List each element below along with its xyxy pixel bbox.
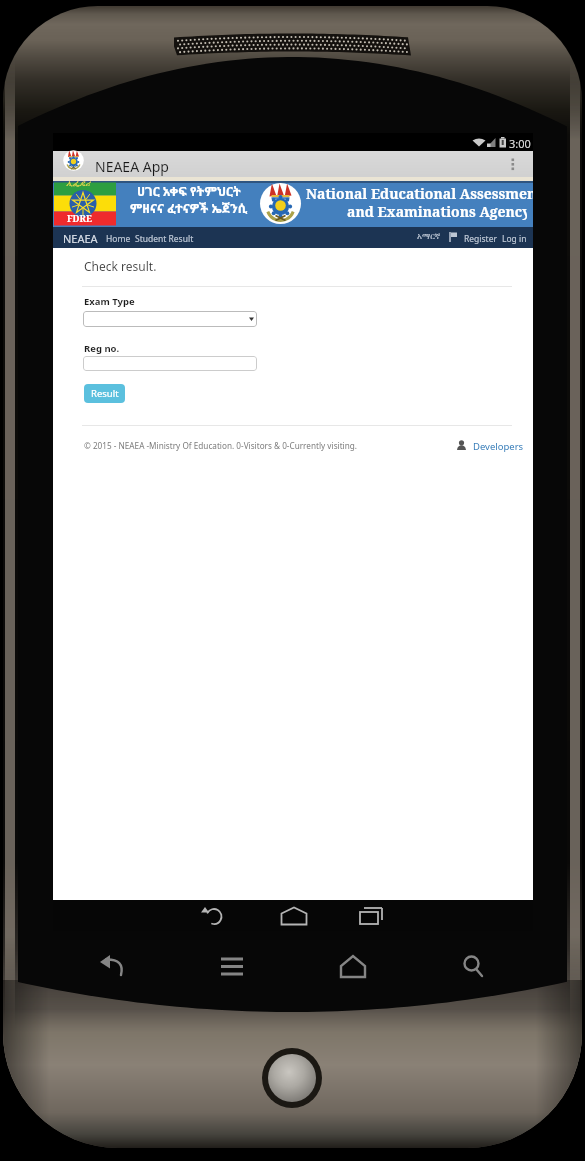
button[interactable]	[53, 900, 213, 931]
staticText: National Educational Assessment	[306, 184, 533, 203]
staticText: Exam Type	[84, 295, 135, 308]
button[interactable]: NEAEA	[63, 231, 98, 246]
staticText: Result	[91, 387, 119, 400]
staticText: FDRE	[67, 212, 92, 224]
staticText: Check result.	[84, 258, 157, 274]
button[interactable]: Home	[106, 233, 131, 245]
button[interactable]: Register	[464, 233, 497, 245]
staticText: NEAEA App	[95, 157, 169, 176]
button[interactable]	[83, 311, 257, 327]
staticText: ኢፌዴሪ	[66, 180, 90, 188]
button[interactable]	[503, 151, 533, 181]
button[interactable]: Developers	[473, 440, 524, 453]
staticText: Reg no.	[84, 342, 120, 355]
button[interactable]	[83, 356, 257, 371]
staticText: ምዘናና ፈተናዎች ኤጀንሲ	[130, 200, 248, 217]
staticText: ሀገር አቀፍ የትምህርት	[137, 183, 241, 200]
button[interactable]	[373, 900, 533, 931]
button[interactable]: Result	[84, 384, 125, 403]
button[interactable]	[213, 900, 373, 931]
button[interactable]: Log in	[502, 233, 527, 245]
button[interactable]: አማርኛ	[417, 232, 441, 241]
staticText: © 2015 - NEAEA -Ministry Of Education. 0…	[84, 440, 358, 451]
staticText: 3:00	[509, 136, 531, 151]
staticText: and Examinations Agency	[347, 202, 527, 221]
button[interactable]: Student Result	[135, 233, 194, 245]
